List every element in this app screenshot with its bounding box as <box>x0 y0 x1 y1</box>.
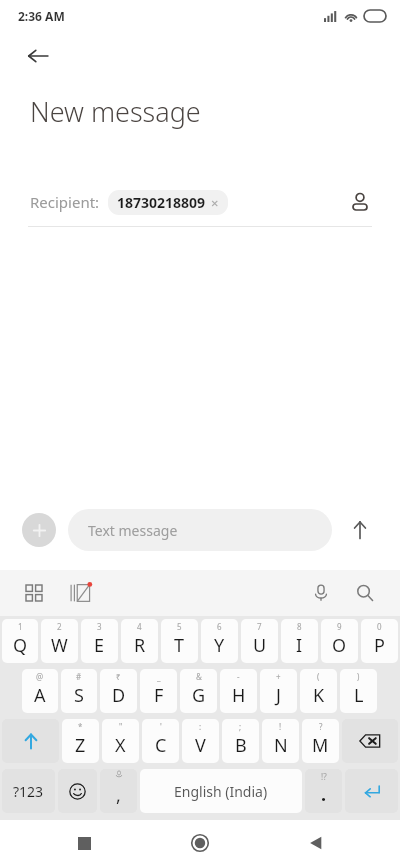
staticText: . <box>321 782 327 807</box>
button[interactable]: + <box>260 669 297 713</box>
button[interactable]: 9 <box>321 619 358 663</box>
staticText: 9 <box>337 621 342 632</box>
staticText: ' <box>160 721 162 732</box>
button[interactable]: 2 <box>41 619 78 663</box>
staticText: × <box>211 194 219 212</box>
staticText: M <box>312 733 329 758</box>
staticText: K <box>313 683 325 708</box>
button[interactable]: !? <box>305 769 342 813</box>
staticText: & <box>196 671 202 682</box>
button[interactable]: 4 <box>121 619 158 663</box>
button[interactable]: Backspace <box>342 719 398 763</box>
button[interactable]: & <box>180 669 217 713</box>
button[interactable]: ! <box>262 719 299 763</box>
button[interactable]: # <box>61 669 97 713</box>
staticText: F <box>154 683 164 708</box>
staticText: E <box>94 633 105 658</box>
staticText: ₹ <box>116 671 121 682</box>
staticText: ( <box>317 671 320 682</box>
staticText: Recipient: <box>30 192 100 212</box>
button[interactable]: ( <box>300 669 337 713</box>
button[interactable]: " <box>102 719 139 763</box>
staticText: 7 <box>257 621 262 632</box>
button[interactable]: ' <box>142 719 179 763</box>
staticText: , <box>116 783 121 808</box>
staticText: Q <box>13 633 28 658</box>
staticText: ?123 <box>13 782 44 801</box>
button[interactable]: Back <box>18 36 58 76</box>
staticText: !? <box>321 771 327 782</box>
staticText: * <box>78 721 83 732</box>
staticText: 0 <box>377 621 382 632</box>
button[interactable]: Enter <box>345 769 398 813</box>
staticText: 6 <box>217 621 222 632</box>
button[interactable]: _ <box>140 669 177 713</box>
button[interactable]: Search <box>348 576 382 610</box>
button[interactable]: ; <box>222 719 259 763</box>
button[interactable]: Input method <box>64 576 98 610</box>
staticText: T <box>174 633 185 658</box>
staticText: L <box>354 683 364 708</box>
button[interactable]: ? <box>302 719 339 763</box>
staticText: J <box>276 683 281 708</box>
staticText: 1 <box>18 621 23 632</box>
button[interactable]: English (India) <box>140 769 302 813</box>
staticText: N <box>274 733 288 758</box>
staticText: 5 <box>177 621 182 632</box>
staticText: R <box>134 633 146 658</box>
staticText: + <box>276 671 281 682</box>
staticText: S <box>74 683 84 708</box>
button[interactable]: ₹ <box>100 669 137 713</box>
button[interactable]: : <box>182 719 219 763</box>
staticText: 18730218809 <box>117 193 206 212</box>
staticText: # <box>76 671 82 682</box>
staticText: @ <box>36 671 44 682</box>
staticText: C <box>155 733 167 758</box>
staticText: 8 <box>297 621 302 632</box>
staticText: 3 <box>97 621 102 632</box>
button[interactable]: Add attachment <box>22 513 56 547</box>
button[interactable]: Keyboard modes <box>18 577 50 609</box>
staticText: D <box>112 683 126 708</box>
staticText: 4 <box>137 621 142 632</box>
button[interactable]: 8 <box>281 619 318 663</box>
button[interactable]: - <box>220 669 257 713</box>
button[interactable]: Shift <box>2 719 59 763</box>
button[interactable]: @ <box>22 669 58 713</box>
staticText: G <box>192 683 206 708</box>
staticText: A <box>34 683 46 708</box>
button[interactable]: Home <box>178 821 222 865</box>
button[interactable]: 18730218809 <box>108 190 228 215</box>
button[interactable]: 1 <box>2 619 38 663</box>
staticText: ; <box>239 721 242 732</box>
button[interactable]: ?123 <box>2 769 55 813</box>
button[interactable]: Back <box>294 821 338 865</box>
button[interactable]: Contacts <box>342 184 378 220</box>
staticText: : <box>199 721 202 732</box>
button[interactable]: 7 <box>241 619 278 663</box>
button[interactable]: Recents <box>62 821 106 865</box>
button[interactable]: * <box>62 719 99 763</box>
button[interactable]: ) <box>340 669 377 713</box>
staticText: Y <box>214 633 225 658</box>
button[interactable]: Send <box>342 512 378 548</box>
staticText: _ <box>157 671 161 682</box>
staticText: V <box>195 733 206 758</box>
staticText: U <box>253 633 267 658</box>
button[interactable]: 5 <box>161 619 198 663</box>
button[interactable]: , <box>100 769 137 813</box>
staticText: I <box>296 633 303 658</box>
staticText: - <box>237 671 240 682</box>
staticText: W <box>51 633 68 658</box>
staticText: O <box>332 633 347 658</box>
button[interactable]: 6 <box>201 619 238 663</box>
button[interactable]: Voice input <box>304 576 338 610</box>
button[interactable]: Text message <box>68 509 332 551</box>
staticText: Z <box>75 733 86 758</box>
staticText: Text message <box>88 521 178 540</box>
button[interactable]: 0 <box>361 619 398 663</box>
staticText: P <box>374 633 385 658</box>
button[interactable]: 3 <box>81 619 118 663</box>
staticText: ? <box>319 721 323 732</box>
button[interactable]: Emoji <box>58 769 97 813</box>
